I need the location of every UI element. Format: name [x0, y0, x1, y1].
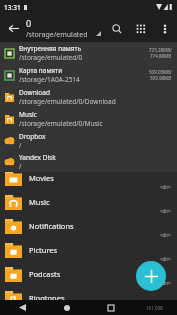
- button[interactable]: Grid view: [129, 15, 153, 42]
- staticText: 725.28MB/: [149, 47, 172, 53]
- staticText: /storage/emulated: [26, 30, 88, 40]
- staticText: <dir>: [160, 256, 171, 262]
- button[interactable]: Pictures: [0, 238, 177, 262]
- staticText: Карта памяти: [19, 66, 63, 75]
- button[interactable]: Music: [0, 190, 177, 214]
- button[interactable]: Dropbox: [0, 130, 177, 151]
- staticText: Yandex Disk: [19, 153, 56, 162]
- button[interactable]: Download: [0, 86, 177, 108]
- staticText: /storage/emulated/0/Music: [19, 119, 103, 128]
- button[interactable]: Карта памяти: [0, 64, 177, 86]
- button[interactable]: Back: [0, 14, 26, 42]
- staticText: 774.89MB: [150, 53, 172, 59]
- button[interactable]: Notifications: [0, 214, 177, 238]
- staticText: <dir>: [160, 232, 171, 238]
- staticText: Pictures: [29, 245, 160, 255]
- staticText: Podcasts: [29, 269, 160, 279]
- staticText: /: [19, 162, 22, 171]
- staticText: 509.98MB: [150, 75, 172, 81]
- staticText: 13:31: [4, 3, 21, 12]
- staticText: 161.00B: [146, 305, 164, 311]
- staticText: Music: [29, 197, 160, 207]
- staticText: 0.7z1: [27, 310, 171, 315]
- staticText: 0: [26, 17, 32, 29]
- staticText: /storage/emulated/0: [19, 53, 83, 62]
- button[interactable]: Back: [0, 300, 45, 315]
- button[interactable]: More options: [153, 15, 177, 42]
- button[interactable]: Yandex Disk: [0, 151, 177, 172]
- button[interactable]: Music: [0, 108, 177, 130]
- staticText: /storage/1A0A-2514: [19, 75, 80, 84]
- staticText: Download: [19, 88, 50, 97]
- staticText: Внутренняя память: [19, 44, 82, 53]
- staticText: /: [19, 141, 22, 150]
- staticText: <dir>: [160, 208, 171, 214]
- button[interactable]: Podcasts: [0, 262, 177, 286]
- staticText: <dir>: [160, 184, 171, 190]
- button[interactable]: Add: [136, 261, 166, 291]
- staticText: 509.05MB/: [149, 69, 172, 75]
- staticText: Music: [19, 110, 37, 119]
- button[interactable]: Ringtones: [0, 286, 177, 310]
- button[interactable]: Внутренняя память: [0, 42, 177, 64]
- button[interactable]: Recents: [89, 300, 133, 315]
- button[interactable]: 0.7z1: [0, 310, 177, 315]
- staticText: Movies: [29, 173, 160, 183]
- button[interactable]: Home: [45, 300, 89, 315]
- staticText: <dir>: [160, 304, 171, 310]
- button[interactable]: Movies: [0, 166, 177, 190]
- staticText: Notifications: [29, 221, 160, 231]
- staticText: <dir>: [160, 280, 171, 286]
- staticText: Dropbox: [19, 132, 46, 141]
- staticText: /storage/emulated/0/Download: [19, 97, 116, 106]
- staticText: Ringtones: [29, 293, 160, 303]
- button[interactable]: Search: [105, 15, 129, 42]
